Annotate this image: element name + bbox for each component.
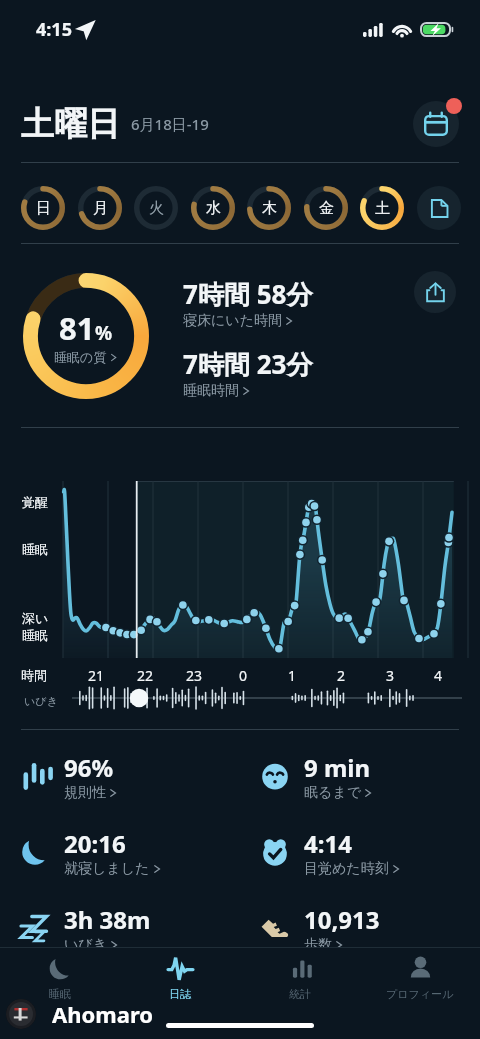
staticText: 月	[93, 199, 108, 218]
staticText: 歩数	[304, 936, 332, 954]
staticText: 火	[149, 199, 164, 218]
staticText: 23	[186, 666, 203, 685]
staticText: 日	[36, 199, 51, 218]
staticText: 規則性	[64, 784, 106, 802]
staticText: 統計	[289, 987, 311, 1001]
button[interactable]: 金	[302, 184, 350, 232]
staticText: 7時間 23分	[183, 346, 313, 382]
staticText: %	[95, 320, 113, 346]
staticText: 睡眠	[49, 987, 71, 1001]
button[interactable]: 7時間 23分	[183, 346, 313, 400]
button[interactable]: 20:16	[12, 824, 252, 880]
button[interactable]: 土	[358, 184, 406, 232]
button[interactable]: 統計	[240, 955, 360, 1007]
staticText: 土	[375, 199, 390, 218]
staticText: いびき	[64, 936, 107, 954]
staticText: 0	[239, 666, 248, 685]
button[interactable]: 9 min	[252, 748, 478, 804]
staticText: 睡眠時間	[183, 382, 239, 400]
staticText: プロフィール	[386, 987, 454, 1001]
button[interactable]: プロフィール	[360, 955, 480, 1007]
staticText: Ahomaro	[52, 999, 154, 1029]
staticText: 金	[319, 199, 334, 218]
staticText: 寝床にいた時間	[183, 312, 282, 330]
staticText: 土曜日	[21, 103, 120, 145]
button[interactable]: 3h 38m	[12, 900, 252, 956]
button[interactable]: 火	[132, 184, 180, 232]
button[interactable]: 7時間 58分	[183, 276, 313, 330]
button[interactable]: 4:14	[252, 824, 478, 880]
staticText: 21	[88, 666, 105, 685]
button[interactable]: 睡眠	[0, 955, 120, 1007]
staticText: 覚醒	[22, 494, 48, 510]
button[interactable]: 96%	[12, 748, 252, 804]
button[interactable]: 月	[76, 184, 124, 232]
staticText: 22	[137, 666, 154, 685]
staticText: 時間	[21, 667, 47, 683]
staticText: 木	[262, 199, 277, 218]
staticText: 目覚めた時刻	[304, 860, 389, 878]
button[interactable]: 81	[23, 273, 149, 399]
button[interactable]: 木	[245, 184, 293, 232]
staticText: 96%	[64, 751, 114, 784]
button[interactable]: 水	[189, 184, 237, 232]
staticText: 睡眠の質	[54, 349, 107, 365]
staticText: いびき	[24, 694, 58, 708]
staticText: 睡眠	[22, 541, 48, 557]
staticText: 睡眠	[22, 627, 48, 643]
staticText: 就寝しました	[64, 860, 150, 878]
button[interactable]: Notes	[415, 184, 463, 232]
staticText: 4	[434, 666, 443, 685]
staticText: 眠るまで	[304, 784, 361, 802]
staticText: 10,913	[304, 903, 380, 936]
staticText: 1	[288, 666, 297, 685]
staticText: 7時間 58分	[183, 276, 313, 312]
staticText: 3	[386, 666, 395, 685]
staticText: 水	[206, 199, 221, 218]
staticText: 6月18日-19	[131, 114, 209, 134]
button[interactable]: Share	[411, 268, 459, 316]
staticText: 2	[337, 666, 346, 685]
button[interactable]: 日	[19, 184, 67, 232]
staticText: 4:14	[304, 827, 352, 860]
button[interactable]: 10,913	[252, 900, 478, 956]
button[interactable]: 日誌	[120, 955, 240, 1007]
staticText: 81	[59, 307, 95, 349]
staticText: 日誌	[169, 987, 191, 1001]
staticText: 3h 38m	[64, 903, 151, 936]
staticText: 深い	[22, 610, 49, 626]
staticText: 20:16	[64, 827, 126, 860]
staticText: 4:15	[36, 17, 72, 42]
button[interactable]: Calendar	[410, 98, 462, 150]
staticText: 9 min	[304, 751, 371, 784]
